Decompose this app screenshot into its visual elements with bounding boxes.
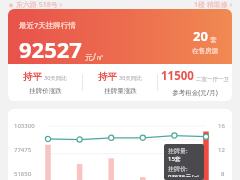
staticText: 12 [218,146,225,154]
staticText: 51650 [14,170,32,178]
staticText: 92527 [19,34,82,64]
button[interactable]: 东六路 518号 › [0,0,240,9]
button[interactable]: 103300 [8,109,232,180]
staticText: 东六路 518号 › [16,0,62,9]
staticText: 15套 [168,155,181,163]
staticText: 参考租金(元/月) [172,88,218,97]
staticText: 30天同比 [44,74,67,82]
staticText: 元/㎡ [85,51,104,62]
staticText: 持平 [23,71,42,83]
staticText: 20 [193,27,208,45]
button[interactable]: 最近7天挂牌行情 [8,9,232,64]
staticText: 挂牌价涨跌 [29,87,62,95]
staticText: 77475 [14,146,32,154]
button[interactable]: 持平 [83,64,157,101]
staticText: 持平 [98,71,117,83]
staticText: 30天同比 [119,74,142,82]
staticText: 套 [210,36,217,44]
button[interactable]: 11500 [158,64,232,101]
staticText: 11500 [161,68,194,84]
staticText: 16 [218,122,225,130]
staticText: 在售房源 [192,47,218,55]
staticText: 挂牌价: [168,165,188,173]
staticText: 103300 [14,122,35,130]
button[interactable]: 持平 [8,64,82,101]
staticText: 1楼 精装修 › [194,0,232,9]
other: 数据提示 [168,147,200,177]
staticText: 挂牌量涨跌 [104,87,137,95]
staticText: 93636元/㎡ [168,173,200,177]
staticText: 最近7天挂牌行情 [19,20,76,30]
staticText: 二室一厅一卫 [196,76,229,83]
staticText: 挂牌量: [168,147,188,155]
staticText: 8 [221,170,225,178]
